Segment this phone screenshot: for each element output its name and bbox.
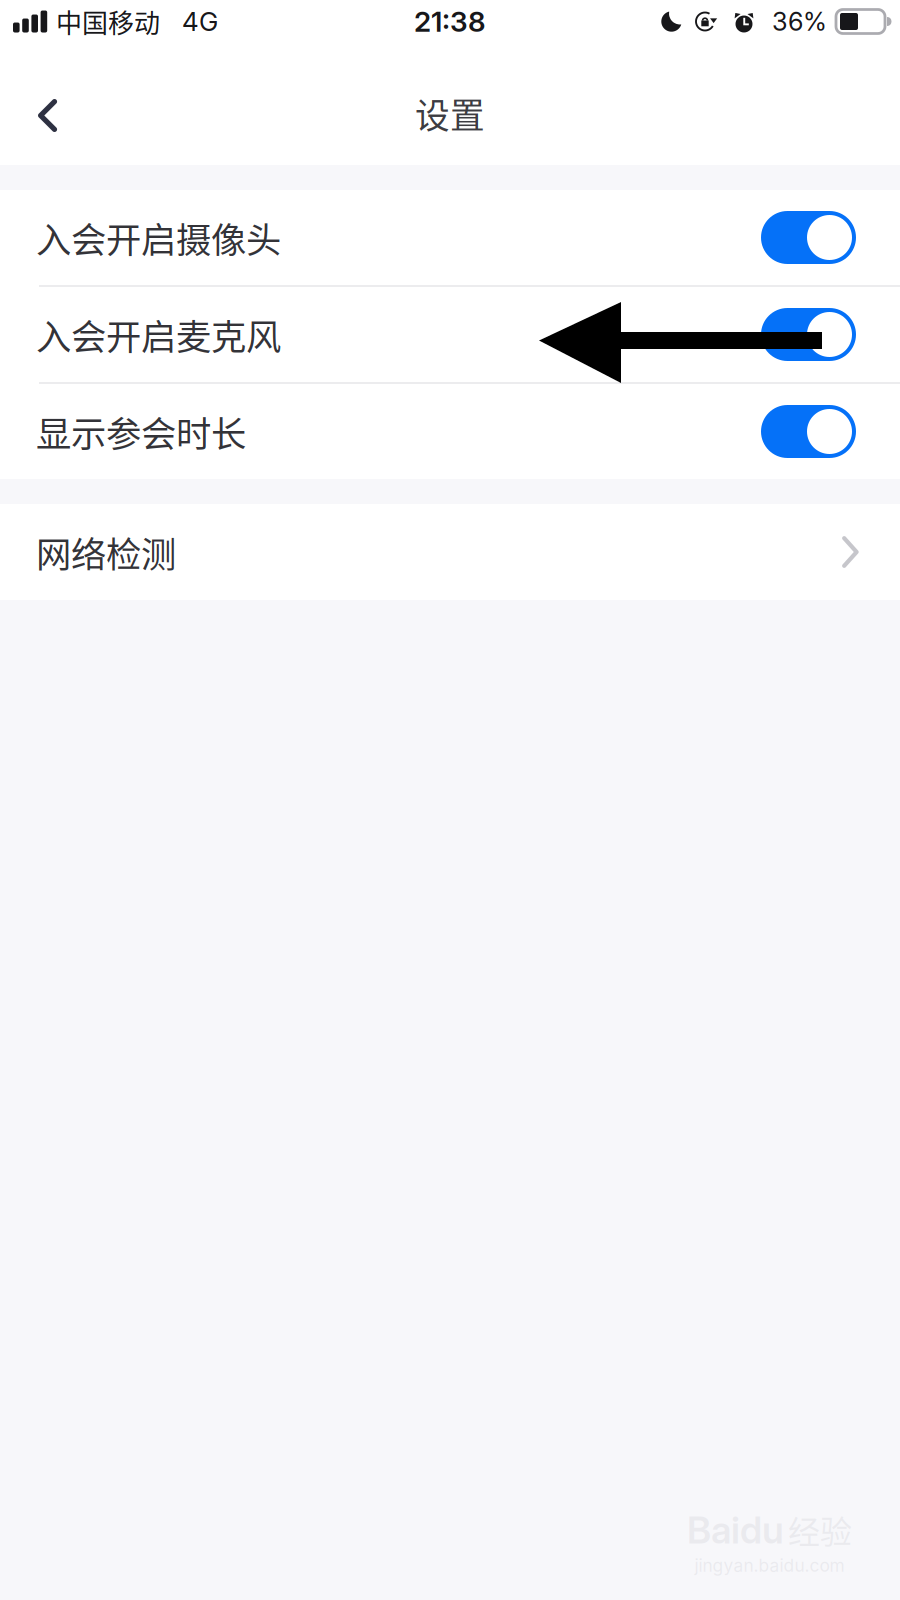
button[interactable]: 入会开启麦克风 [0,287,900,382]
button[interactable]: 显示参会时长 [0,384,900,479]
staticText: 入会开启摄像头 [36,212,281,263]
staticText: 21:38 [414,5,486,38]
staticText: 入会开启麦克风 [36,309,281,360]
staticText: 4G [182,6,218,37]
staticText: 经验 [788,1507,852,1553]
button[interactable]: 入会开启摄像头 [0,190,900,285]
staticText: Baidu [687,1507,784,1552]
staticText: 中国移动 [56,3,160,40]
staticText: 网络检测 [36,526,176,578]
staticText: 设置 [415,88,485,139]
staticText: 显示参会时长 [36,406,246,457]
staticText: 36% [772,6,827,37]
staticText: jingyan.baidu.com [694,1555,844,1576]
button[interactable]: 网络检测 [0,504,900,600]
button[interactable]: Back [0,55,91,165]
